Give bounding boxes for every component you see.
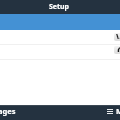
staticText: Setup xyxy=(49,2,70,12)
staticText: Change xyxy=(117,46,120,52)
button[interactable]: Menu xyxy=(107,104,120,118)
button[interactable] xyxy=(0,45,120,59)
button[interactable]: View xyxy=(114,33,120,41)
button[interactable]: Setup xyxy=(0,0,120,14)
staticText: ages xyxy=(0,106,16,116)
button[interactable] xyxy=(0,31,120,44)
staticText: View xyxy=(116,33,120,39)
button[interactable]: Change xyxy=(114,46,120,54)
staticText: M xyxy=(116,106,120,116)
